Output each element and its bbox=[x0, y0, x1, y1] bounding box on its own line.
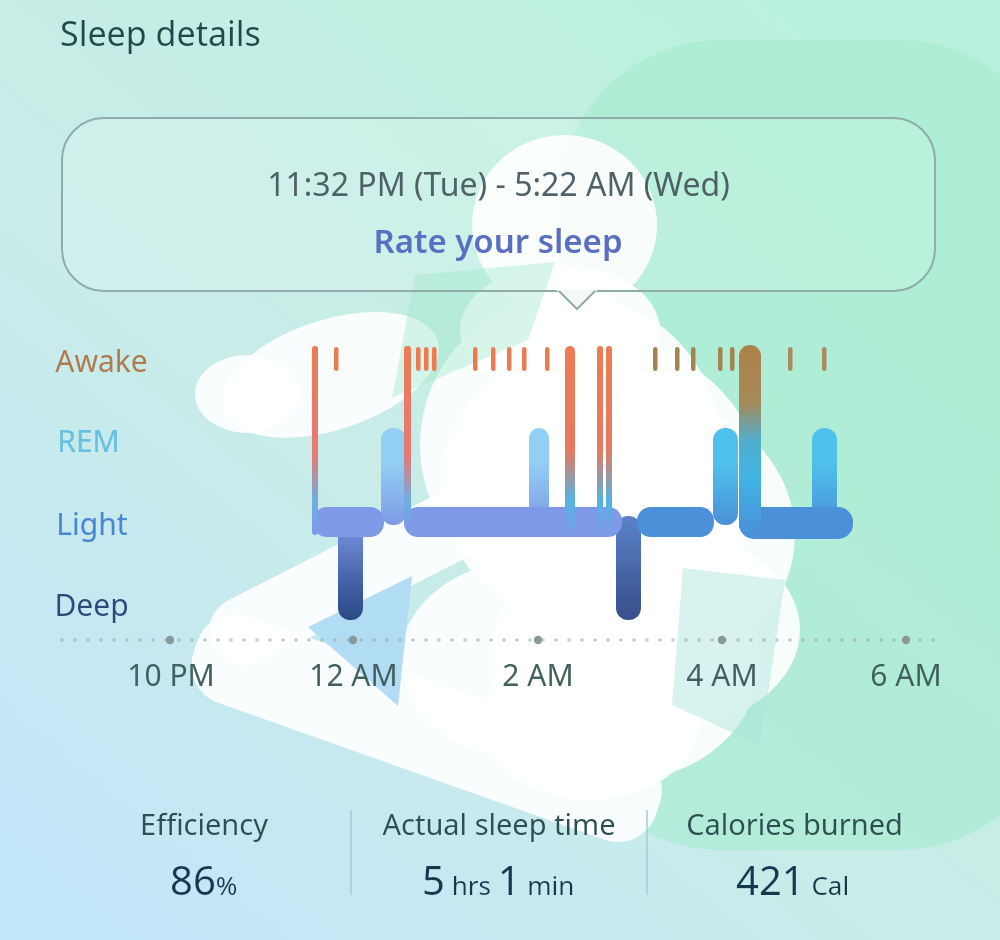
staticText: 12 AM bbox=[309, 654, 398, 695]
staticText: Actual sleep time bbox=[382, 804, 616, 843]
staticText: 2 AM bbox=[502, 654, 574, 695]
staticText: 4 AM bbox=[686, 654, 758, 695]
staticText: 6 AM bbox=[870, 654, 942, 695]
staticText: 5 hrs 1 min bbox=[422, 852, 575, 906]
staticText: Deep bbox=[54, 584, 129, 625]
staticText: Efficiency bbox=[140, 804, 268, 843]
staticText: Light bbox=[56, 503, 128, 544]
button[interactable] bbox=[62, 118, 935, 291]
staticText: 421 Cal bbox=[736, 852, 850, 906]
staticText: 86% bbox=[170, 852, 238, 906]
staticText: 11:32 PM (Tue) - 5:22 AM (Wed) bbox=[267, 162, 730, 206]
staticText: Calories burned bbox=[686, 804, 903, 843]
staticText: Awake bbox=[55, 340, 148, 381]
staticText: REM bbox=[57, 420, 120, 461]
staticText: Rate your sleep bbox=[373, 218, 623, 263]
staticText: Sleep details bbox=[60, 10, 261, 56]
staticText: 10 PM bbox=[127, 654, 215, 695]
